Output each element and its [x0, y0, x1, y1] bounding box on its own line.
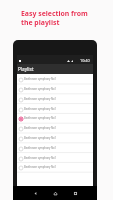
- button[interactable]: Beethoven symphony No1: [17, 143, 93, 153]
- staticText: 10:40: [80, 58, 90, 63]
- staticText: Beethoven symphony No1: [24, 87, 57, 91]
- button[interactable]: Beethoven symphony No1: [17, 123, 93, 133]
- staticText: Beethoven symphony No1: [24, 156, 57, 160]
- button[interactable]: Beethoven symphony No1: [17, 113, 93, 123]
- button[interactable]: Beethoven symphony No1: [17, 104, 93, 114]
- staticText: Beethoven symphony No1: [24, 126, 57, 130]
- button[interactable]: Beethoven symphony No1: [17, 74, 93, 84]
- staticText: Easy selection from: [21, 9, 88, 18]
- button[interactable]: Back: [33, 191, 38, 196]
- button[interactable]: Recents: [73, 191, 78, 196]
- button[interactable]: Beethoven symphony No1: [17, 84, 93, 94]
- button[interactable]: Beethoven symphony No1: [17, 133, 93, 143]
- staticText: Beethoven symphony No1: [24, 146, 57, 150]
- staticText: Playlist: [18, 66, 34, 72]
- button[interactable]: Beethoven symphony No1: [17, 162, 93, 172]
- staticText: Beethoven symphony No1: [24, 116, 57, 120]
- staticText: Beethoven symphony No1: [24, 77, 57, 81]
- staticText: Beethoven symphony No1: [24, 136, 57, 140]
- button[interactable]: Home: [53, 191, 58, 196]
- button[interactable]: Beethoven symphony No1: [17, 153, 93, 163]
- staticText: Beethoven symphony No1: [24, 165, 57, 169]
- staticText: the playlist: [21, 18, 60, 27]
- staticText: Beethoven symphony No1: [24, 97, 57, 101]
- staticText: Beethoven symphony No1: [24, 107, 57, 111]
- button[interactable]: Beethoven symphony No1: [17, 94, 93, 104]
